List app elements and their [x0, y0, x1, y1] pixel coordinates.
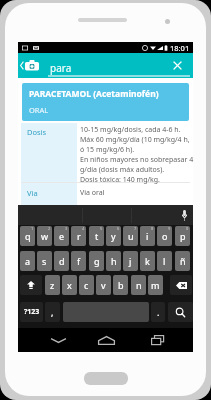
staticText: i	[146, 230, 149, 242]
button[interactable]: z	[45, 275, 60, 295]
staticText: 5	[100, 226, 103, 231]
staticText: k	[145, 255, 150, 267]
button[interactable]: Recent apps	[146, 330, 168, 350]
button[interactable]: n	[131, 275, 146, 295]
button[interactable]: q	[20, 226, 35, 246]
button[interactable]: .	[151, 302, 165, 322]
staticText: e	[59, 230, 65, 242]
staticText: h	[111, 255, 117, 267]
staticText: b	[118, 279, 124, 291]
staticText: 0	[186, 226, 189, 231]
staticText: 6	[117, 226, 120, 231]
staticText: w	[41, 230, 49, 242]
button[interactable]: h	[106, 251, 121, 271]
staticText: Dosis tóxica: 140 mg/kg.	[80, 175, 160, 185]
staticText: s	[42, 255, 47, 267]
button[interactable]: f	[71, 251, 86, 271]
staticText: 18:01	[170, 43, 190, 53]
staticText: para	[50, 61, 72, 75]
staticText: ,	[51, 306, 54, 318]
staticText: n	[136, 279, 142, 291]
button[interactable]: Backspace	[170, 275, 192, 295]
button[interactable]: y	[106, 226, 121, 246]
staticText: z	[50, 279, 55, 291]
staticText: 2	[48, 226, 51, 231]
button[interactable]: Navigate up	[18, 53, 42, 78]
button[interactable]: k	[140, 251, 155, 271]
staticText: q	[25, 230, 31, 242]
staticText: m	[151, 279, 160, 291]
button[interactable]: Search	[168, 302, 193, 322]
button[interactable]: PARACETAMOL (Acetaminofén)	[22, 83, 189, 121]
staticText: 1	[31, 226, 34, 231]
button[interactable]: e	[54, 226, 69, 246]
staticText: En niños mayores no sobrepasar 4	[80, 155, 194, 165]
button[interactable]: a	[20, 251, 35, 271]
button[interactable]: w	[37, 226, 52, 246]
staticText: t	[95, 230, 99, 242]
staticText: g	[94, 255, 100, 267]
button[interactable]: i	[140, 226, 155, 246]
staticText: x	[67, 279, 72, 291]
button[interactable]: t	[89, 226, 104, 246]
staticText: PARACETAMOL (Acetaminofén)	[29, 88, 159, 100]
staticText: p	[180, 230, 186, 242]
staticText: 10-15 mg/kg/dosis, cada 4-6 h.	[80, 125, 181, 135]
button[interactable]: Home	[95, 330, 117, 350]
button[interactable]: d	[54, 251, 69, 271]
staticText: r	[77, 230, 81, 242]
staticText: a	[25, 255, 31, 267]
button[interactable]: u	[123, 226, 138, 246]
button[interactable]: Back	[47, 330, 69, 350]
button[interactable]: ?123	[20, 302, 43, 322]
staticText: Dosis	[27, 127, 47, 137]
staticText: 7	[134, 226, 137, 231]
button[interactable]: j	[123, 251, 138, 271]
staticText: Via	[27, 188, 38, 198]
button[interactable]: Voice input	[175, 206, 193, 224]
button[interactable]: Clear search	[169, 57, 185, 73]
staticText: 4	[82, 226, 85, 231]
staticText: o	[162, 230, 168, 242]
staticText: ORAL	[29, 105, 49, 115]
button[interactable]: o	[157, 226, 172, 246]
button[interactable]: m	[148, 275, 163, 295]
staticText: g/día (dosis máx adultos).	[80, 165, 165, 175]
button[interactable]: ,	[45, 302, 60, 322]
staticText: d	[59, 255, 65, 267]
button[interactable]: l	[157, 251, 172, 271]
button[interactable]: r	[71, 226, 86, 246]
staticText: j	[129, 255, 132, 267]
staticText: c	[84, 279, 89, 291]
staticText: u	[128, 230, 134, 242]
staticText: Via oral	[80, 188, 105, 198]
button[interactable]: ñ	[175, 251, 190, 271]
staticText: Máx 60 mg/kg/día (10 mg/kg/4 h,	[80, 135, 190, 145]
staticText: f	[77, 255, 81, 267]
staticText: v	[101, 279, 106, 291]
button[interactable]: x	[62, 275, 77, 295]
staticText: 8	[151, 226, 154, 231]
button[interactable]: Home	[84, 372, 128, 385]
staticText: ó 15 mg/kg/6 h).	[80, 145, 135, 155]
staticText: y	[111, 230, 116, 242]
staticText: ?123	[24, 307, 40, 317]
staticText: l	[163, 255, 166, 267]
button[interactable]: s	[37, 251, 52, 271]
button[interactable]: b	[113, 275, 128, 295]
button[interactable]: g	[89, 251, 104, 271]
button[interactable]: Shift	[20, 275, 42, 295]
button[interactable]: c	[79, 275, 94, 295]
staticText: 3	[65, 226, 68, 231]
staticText: 9	[168, 226, 171, 231]
button[interactable]: p	[175, 226, 190, 246]
staticText: .	[157, 306, 160, 318]
staticText: ñ	[180, 255, 186, 267]
button[interactable]: v	[96, 275, 111, 295]
